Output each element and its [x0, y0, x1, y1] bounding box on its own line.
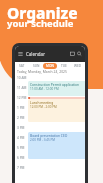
button[interactable]: SAT: [16, 63, 28, 69]
staticText: Lunch meeting: [30, 100, 54, 104]
staticText: 6 PM: [17, 156, 28, 160]
staticText: TUE: [61, 64, 67, 68]
staticText: Construction Permit application: [30, 82, 80, 86]
staticText: 11 AM: [17, 86, 28, 90]
staticText: 12 PM: [17, 96, 28, 100]
button[interactable]: Search: [77, 51, 82, 56]
staticText: 11:00 AM - 12:00 PM: [30, 87, 59, 91]
staticText: SUN: [33, 64, 40, 68]
button[interactable]: Menu: [18, 51, 23, 56]
button[interactable]: Construction Permit application: [28, 81, 85, 96]
staticText: MON: [46, 64, 54, 68]
button[interactable]: MON: [43, 63, 57, 69]
staticText: WED: [74, 64, 82, 68]
staticText: 3 PM: [17, 126, 28, 130]
staticText: Today, Monday, March 24, 2025: [17, 69, 68, 74]
button[interactable]: Today: [70, 51, 75, 56]
staticText: SAT: [19, 64, 25, 68]
staticText: Board presentation CEO: [30, 133, 68, 137]
button[interactable]: TUE: [58, 63, 70, 69]
button[interactable]: SUN: [30, 63, 43, 69]
staticText: 10 AM: [17, 76, 28, 80]
staticText: 7 PM: [17, 166, 28, 170]
staticText: Organize: [7, 2, 78, 23]
staticText: 4 PM: [17, 136, 28, 140]
staticText: 12:00 PM - 2:00 PM: [30, 105, 57, 109]
staticText: Calendar: [26, 51, 45, 57]
staticText: 2 PM: [17, 116, 28, 120]
button[interactable]: WED: [71, 63, 85, 69]
staticText: 1 PM: [17, 106, 28, 110]
button[interactable]: Lunch meeting: [28, 99, 85, 122]
staticText: 5 PM: [17, 146, 28, 150]
button[interactable]: Board presentation CEO: [28, 132, 85, 159]
staticText: 2:00 PM - 3:45 PM: [30, 138, 56, 142]
staticText: your schedule: [7, 17, 74, 30]
